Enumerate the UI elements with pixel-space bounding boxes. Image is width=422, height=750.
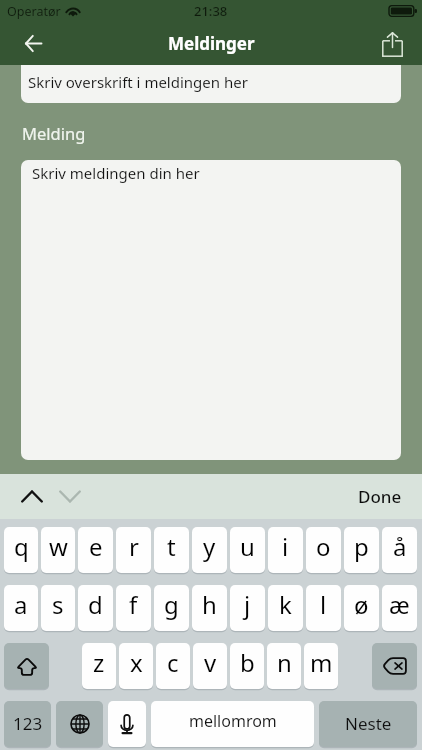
staticText: q [14,530,29,563]
staticText: mellomrom [189,710,277,732]
button[interactable]: c [156,643,190,689]
button[interactable]: e [78,527,113,573]
staticText: Meldinger [168,32,255,55]
button[interactable]: å [382,527,417,573]
staticText: g [164,588,179,621]
button[interactable]: n [267,643,301,689]
staticText: h [202,588,217,621]
staticText: Done [358,485,402,508]
button[interactable]: a [4,585,38,631]
button[interactable]: o [306,527,341,573]
staticText: j [244,588,251,621]
button[interactable]: Dictate [108,701,146,747]
staticText: n [277,646,292,679]
staticText: w [49,530,68,563]
staticText: u [240,530,255,563]
staticText: s [52,588,64,621]
button[interactable]: 123 [4,701,51,747]
button[interactable]: s [41,585,75,631]
staticText: v [204,646,217,679]
staticText: x [130,646,143,679]
button[interactable]: Share [372,22,412,65]
button[interactable]: Backspace [372,643,417,689]
staticText: p [354,530,369,563]
button[interactable]: f [116,585,151,631]
staticText: å [393,530,407,563]
button[interactable]: ø [344,585,379,631]
button[interactable]: Done [358,474,402,519]
staticText: o [316,530,331,563]
button[interactable]: g [154,585,189,631]
button[interactable]: Skriv overskrift i meldingen her [21,65,401,103]
button[interactable]: v [193,643,227,689]
staticText: Melding [22,122,86,144]
staticText: z [93,646,105,679]
staticText: æ [389,588,410,621]
staticText: Skriv meldingen din her [32,163,200,183]
staticText: t [167,530,176,563]
button[interactable]: w [41,527,75,573]
button[interactable]: p [344,527,379,573]
button[interactable]: z [82,643,116,689]
staticText: Operatør [7,3,61,20]
staticText: c [167,646,179,679]
staticText: m [310,646,333,679]
button[interactable]: t [154,527,189,573]
staticText: f [129,588,138,621]
button[interactable]: Shift [4,643,49,689]
staticText: Skriv overskrift i meldingen her [28,72,248,92]
button[interactable]: r [116,527,151,573]
staticText: e [89,530,103,563]
staticText: ø [354,588,369,621]
button[interactable]: k [268,585,303,631]
staticText: a [14,588,28,621]
button[interactable]: Neste [319,701,417,747]
staticText: l [320,588,327,621]
button[interactable]: Next field [51,474,89,519]
button[interactable]: m [304,643,338,689]
staticText: b [240,646,255,679]
staticText: i [282,530,289,563]
button[interactable]: j [230,585,265,631]
button[interactable]: y [192,527,227,573]
button[interactable]: Back [0,22,66,65]
button[interactable]: d [78,585,113,631]
staticText: Neste [345,712,392,735]
button[interactable]: Change keyboard [56,701,103,747]
button[interactable]: Skriv meldingen din her [21,160,401,460]
button[interactable]: æ [382,585,417,631]
button[interactable]: q [4,527,38,573]
button[interactable]: mellomrom [151,701,314,747]
button[interactable]: l [306,585,341,631]
button[interactable]: u [230,527,265,573]
button[interactable]: b [230,643,264,689]
button[interactable]: i [268,527,303,573]
staticText: d [88,588,103,621]
button[interactable]: h [192,585,227,631]
staticText: 123 [13,712,43,735]
staticText: y [203,530,216,563]
staticText: 21:38 [194,2,228,20]
button[interactable]: Previous field [13,474,51,519]
staticText: r [129,530,139,563]
staticText: k [279,588,292,621]
button[interactable]: x [119,643,153,689]
